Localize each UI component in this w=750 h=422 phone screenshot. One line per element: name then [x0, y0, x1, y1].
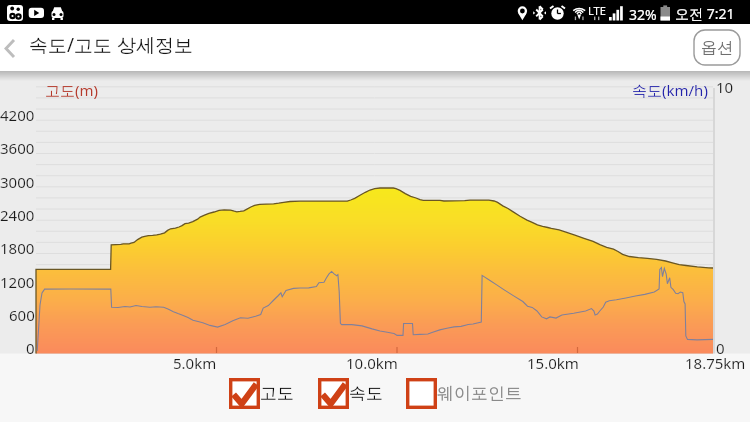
- staticText: 1800: [0, 238, 35, 258]
- staticText: 0: [26, 338, 35, 358]
- staticText: 10: [716, 77, 734, 97]
- staticText: 4200: [0, 105, 35, 125]
- staticText: 오전 7:21: [675, 4, 735, 23]
- button[interactable]: 고도: [229, 378, 294, 409]
- button[interactable]: 옵션: [694, 30, 740, 65]
- staticText: 속도(km/h): [632, 80, 708, 100]
- staticText: 0: [716, 338, 725, 358]
- staticText: 속도: [349, 383, 383, 404]
- staticText: 10.0km: [346, 353, 398, 373]
- staticText: 고도(m): [45, 80, 99, 100]
- staticText: 2400: [0, 205, 35, 225]
- staticText: 1200: [0, 272, 35, 292]
- staticText: 15.0km: [527, 353, 579, 373]
- staticText: 3000: [0, 172, 35, 192]
- button[interactable]: 웨이포인트: [406, 378, 522, 409]
- staticText: 웨이포인트: [437, 383, 522, 404]
- staticText: 600: [9, 305, 35, 325]
- staticText: 고도: [260, 383, 294, 404]
- staticText: 속도/고도 상세정보: [29, 32, 194, 58]
- staticText: 32%: [629, 5, 657, 24]
- button[interactable]: Back: [0, 28, 19, 68]
- button[interactable]: 속도: [318, 378, 383, 409]
- staticText: 18.75km: [685, 353, 746, 373]
- staticText: 옵션: [701, 38, 733, 58]
- staticText: 3600: [0, 138, 35, 158]
- staticText: 5.0km: [173, 353, 217, 373]
- staticText: LTE: [588, 3, 606, 18]
